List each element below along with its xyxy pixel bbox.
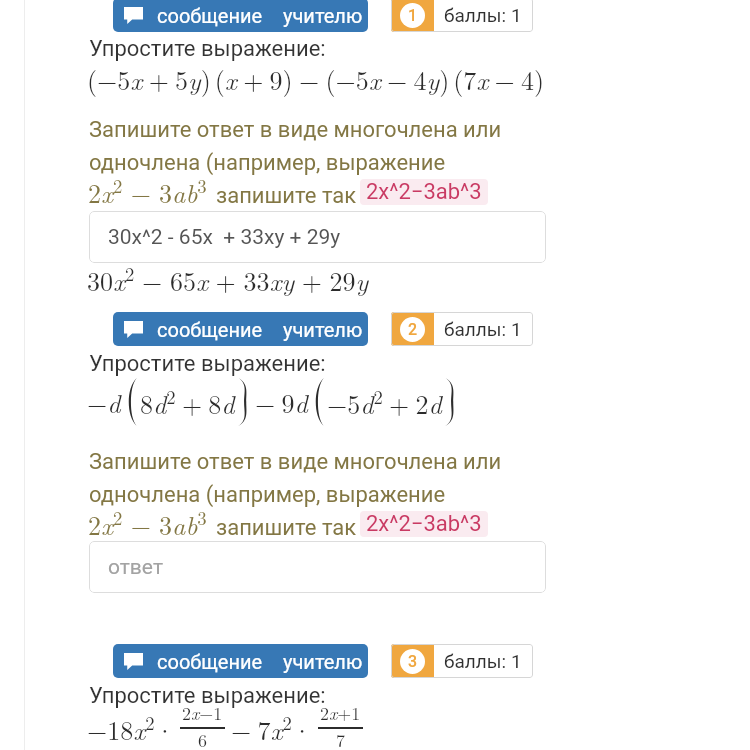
staticText: (−5x + 5y) (x + 9) − (−5x − 4y) (7x − 4) bbox=[87, 61, 545, 98]
staticText: учителю bbox=[283, 318, 363, 341]
staticText: 2x^2−3ab^3 bbox=[366, 511, 482, 537]
staticText: запишите так bbox=[216, 515, 357, 541]
staticText: 7 bbox=[336, 727, 345, 750]
staticText: 2x2 − 3ab3 bbox=[88, 172, 207, 210]
staticText: 30x2 − 65x + 33xy + 29y bbox=[87, 260, 369, 298]
staticText: запишите так bbox=[216, 183, 357, 209]
staticText: − 9d bbox=[255, 384, 308, 421]
button[interactable]: 30x^2 - 65x + 33xy + 29y bbox=[89, 211, 546, 263]
button[interactable]: 1 bbox=[391, 0, 533, 32]
staticText: 3 bbox=[408, 652, 418, 671]
staticText: −5d2 + 2d bbox=[327, 383, 442, 421]
staticText: 2x2 − 3ab3 bbox=[88, 504, 207, 542]
staticText: сообщение bbox=[157, 650, 263, 673]
staticText: сообщение bbox=[157, 318, 263, 341]
staticText: −18x2· bbox=[87, 709, 175, 747]
staticText: 2x−1 bbox=[182, 700, 223, 726]
staticText: баллы: 1 bbox=[444, 318, 522, 340]
staticText: 2x+1 bbox=[320, 700, 361, 726]
staticText: одночлена (например, выражение bbox=[89, 150, 446, 176]
staticText: 30x^2 - 65x + 33xy + 29y bbox=[108, 225, 341, 250]
staticText: 6 bbox=[198, 727, 207, 750]
staticText: − 7x2· bbox=[231, 709, 313, 747]
staticText: учителю bbox=[283, 4, 363, 27]
staticText: 2x^2−3ab^3 bbox=[366, 179, 482, 205]
staticText: учителю bbox=[283, 650, 363, 673]
staticText: Упростите выражение: bbox=[89, 683, 326, 709]
button[interactable]: сообщение bbox=[113, 644, 368, 678]
staticText: Упростите выражение: bbox=[89, 351, 326, 377]
staticText: Упростите выражение: bbox=[89, 36, 326, 62]
staticText: баллы: 1 bbox=[444, 650, 522, 672]
button[interactable]: 3 bbox=[391, 644, 533, 678]
staticText: 2 bbox=[408, 320, 418, 339]
staticText: ответ bbox=[108, 555, 163, 580]
staticText: 8d2 + 8d bbox=[140, 383, 235, 421]
button[interactable]: сообщение bbox=[113, 0, 368, 32]
staticText: −d bbox=[87, 384, 121, 421]
staticText: одночлена (например, выражение bbox=[89, 482, 446, 508]
button[interactable]: сообщение bbox=[113, 312, 368, 346]
button[interactable]: 2 bbox=[391, 312, 533, 346]
staticText: Запишите ответ в виде многочлена или bbox=[89, 449, 502, 475]
staticText: Запишите ответ в виде многочлена или bbox=[89, 117, 502, 143]
staticText: сообщение bbox=[157, 4, 263, 27]
staticText: 1 bbox=[408, 6, 418, 25]
button[interactable]: ответ bbox=[89, 541, 546, 593]
staticText: баллы: 1 bbox=[444, 4, 522, 26]
